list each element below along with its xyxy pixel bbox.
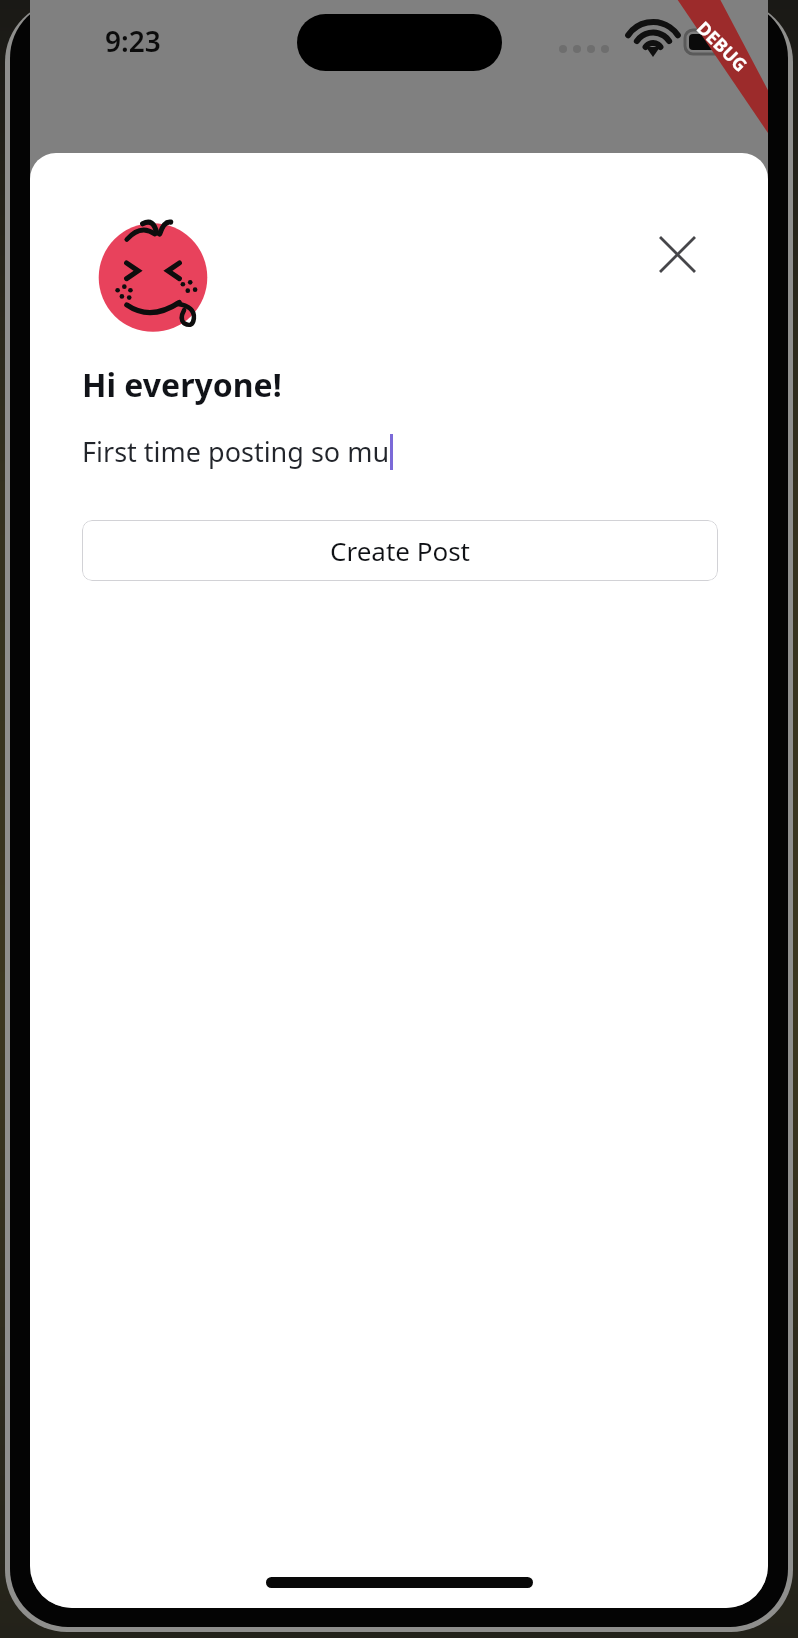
staticText: DEBUG [691,16,753,77]
button[interactable]: Create Post [82,520,718,581]
staticText: Hi everyone! [82,363,282,407]
staticText: 9:23 [105,22,161,60]
staticText: Create Post [330,533,471,568]
button[interactable]: Close [648,225,706,283]
staticText: First time posting so mu [82,433,390,470]
